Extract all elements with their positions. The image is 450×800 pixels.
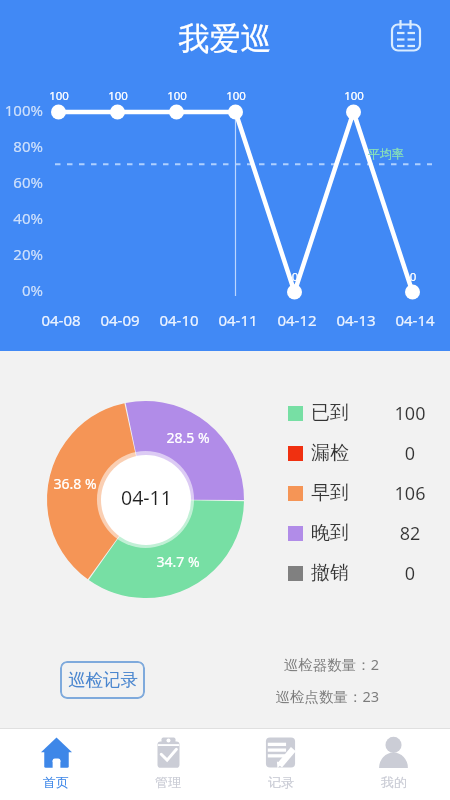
staticText: 平均率 <box>368 146 404 161</box>
staticText: 0 <box>380 561 440 586</box>
staticText: 100 <box>207 88 265 104</box>
staticText: 60% <box>0 172 43 192</box>
staticText: 04-08 <box>32 310 90 330</box>
staticText: 04-13 <box>327 310 385 330</box>
staticText: 80% <box>0 136 43 156</box>
staticText: 晚到 <box>311 521 349 545</box>
staticText: 100 <box>380 401 440 426</box>
staticText: 巡检点数量：23 <box>179 686 379 706</box>
button[interactable]: 巡检记录 <box>60 661 145 699</box>
staticText: 0% <box>0 280 43 300</box>
button[interactable]: 已到 <box>288 393 440 433</box>
staticText: 我的 <box>381 774 407 790</box>
button[interactable]: Calendar <box>386 18 426 58</box>
staticText: 100 <box>148 88 206 104</box>
staticText: 20% <box>0 244 43 264</box>
staticText: 100 <box>325 88 383 104</box>
staticText: 早到 <box>311 481 349 505</box>
staticText: 40% <box>0 208 43 228</box>
button[interactable]: 我的 <box>337 728 450 800</box>
button[interactable]: 管理 <box>112 728 224 800</box>
staticText: 36.8 % <box>45 474 105 493</box>
staticText: 巡检记录 <box>68 669 138 691</box>
staticText: 已到 <box>311 401 349 425</box>
button[interactable]: 漏检 <box>288 433 440 473</box>
staticText: 82 <box>380 521 440 546</box>
staticText: 记录 <box>268 774 294 790</box>
staticText: 106 <box>380 481 440 506</box>
staticText: 04-12 <box>268 310 326 330</box>
staticText: 34.7 % <box>148 552 208 571</box>
staticText: 100 <box>30 88 88 104</box>
button[interactable]: 早到 <box>288 473 440 513</box>
staticText: 0 <box>266 269 324 285</box>
button[interactable]: 记录 <box>224 728 337 800</box>
staticText: 04-14 <box>386 310 444 330</box>
staticText: 100 <box>89 88 147 104</box>
staticText: 0 <box>380 441 440 466</box>
staticText: 0 <box>384 269 442 285</box>
staticText: 首页 <box>43 774 69 790</box>
staticText: 漏检 <box>311 441 349 465</box>
staticText: 巡检器数量：2 <box>179 654 379 674</box>
staticText: 我爱巡 <box>0 19 450 58</box>
staticText: 04-11 <box>209 310 267 330</box>
staticText: 04-10 <box>150 310 208 330</box>
staticText: 撤销 <box>311 561 349 585</box>
button[interactable]: 撤销 <box>288 553 440 593</box>
staticText: 04-09 <box>91 310 149 330</box>
staticText: 04-11 <box>121 484 172 511</box>
staticText: 28.5 % <box>158 428 218 447</box>
button[interactable]: 首页 <box>0 728 112 800</box>
staticText: 100% <box>0 100 43 120</box>
button[interactable]: 晚到 <box>288 513 440 553</box>
staticText: 管理 <box>155 774 181 790</box>
